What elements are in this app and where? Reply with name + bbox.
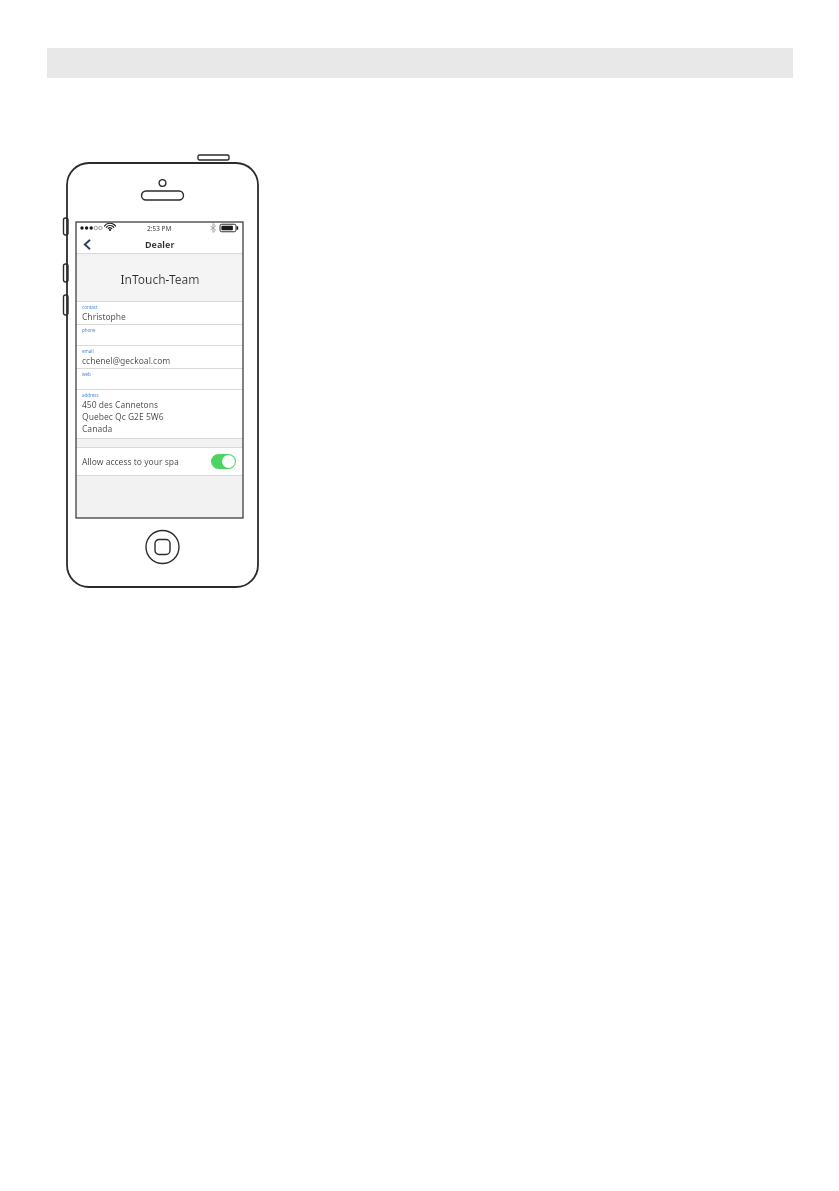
button[interactable]: address [76, 390, 243, 438]
button[interactable]: Allow access to your spa [76, 448, 243, 475]
staticText: Allow access to your spa [82, 456, 179, 468]
staticText: 2:53 PM [147, 224, 172, 233]
button[interactable]: Allow access to your spa toggle [211, 454, 236, 469]
staticText: contact [82, 304, 98, 310]
staticText: web [82, 371, 91, 377]
button[interactable]: web [76, 369, 243, 389]
staticText: email [82, 348, 94, 354]
staticText: 450 des Cannetons [82, 399, 159, 411]
staticText: Dealer [145, 238, 175, 250]
button[interactable]: email [76, 346, 243, 368]
button[interactable]: Back [76, 234, 98, 254]
staticText: InTouch-Team [120, 271, 200, 287]
staticText: phone [82, 327, 96, 333]
button[interactable]: contact [76, 302, 243, 324]
staticText: Canada [82, 423, 113, 435]
button[interactable]: phone [76, 325, 243, 345]
staticText: Christophe [82, 311, 126, 323]
staticText: cchenel@geckoal.com [82, 355, 171, 367]
staticText: address [82, 392, 99, 398]
staticText: Quebec Qc G2E 5W6 [82, 411, 164, 423]
